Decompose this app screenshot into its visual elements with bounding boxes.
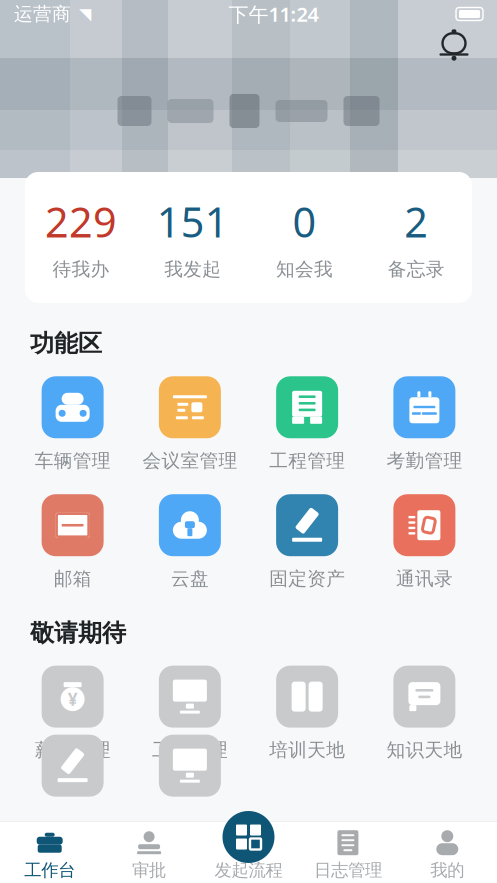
staticText: 车辆管理 — [35, 449, 111, 472]
button[interactable]: 会议室管理 — [131, 376, 248, 472]
staticText: 功能区 — [30, 329, 102, 358]
staticText: 151 — [157, 194, 229, 249]
button[interactable]: ¥ — [14, 666, 131, 761]
button[interactable]: 云盘 — [131, 494, 248, 590]
button[interactable]: 通知 — [437, 28, 471, 62]
staticText: 运营商 — [14, 2, 71, 25]
staticText: 工作台 — [24, 860, 75, 881]
button[interactable]: 固定资产 — [248, 494, 366, 590]
staticText: 薪酬管理 — [35, 739, 111, 761]
staticText: 日志管理 — [314, 860, 382, 881]
staticText: 审批 — [132, 860, 166, 881]
button[interactable]: 日志管理 — [298, 824, 398, 881]
staticText: 发起流程 — [214, 860, 282, 881]
staticText: 知识天地 — [386, 739, 462, 761]
staticText: 待我办 — [52, 258, 109, 281]
staticText: 工作管理 — [152, 739, 228, 761]
button[interactable]: 车辆管理 — [14, 376, 131, 472]
button[interactable]: 151 — [137, 190, 249, 285]
button[interactable]: 发起流程 — [199, 824, 298, 881]
staticText: 0 — [292, 194, 316, 249]
staticText: 知会我 — [276, 258, 333, 281]
staticText: 229 — [45, 194, 117, 249]
staticText: 我的 — [430, 860, 464, 881]
button[interactable]: 邮箱 — [14, 494, 131, 590]
button[interactable]: 我的 — [398, 824, 497, 881]
button[interactable]: 知识天地 — [366, 666, 483, 761]
button[interactable]: 工作台 — [0, 824, 99, 881]
button[interactable] — [131, 735, 248, 832]
staticText: 2 — [404, 194, 428, 249]
button[interactable]: 发起流程 — [222, 811, 274, 863]
button[interactable]: 0 — [248, 190, 360, 285]
button[interactable]: 通讯录 — [366, 494, 483, 590]
staticText: ¥ — [68, 688, 78, 711]
button[interactable]: 229 — [25, 190, 137, 285]
staticText: 下午11:24 — [228, 1, 318, 27]
staticText: 通讯录 — [396, 567, 453, 590]
staticText: 培训天地 — [269, 739, 345, 761]
button[interactable]: 2 — [360, 190, 472, 285]
button[interactable]: 考勤管理 — [366, 376, 483, 472]
staticText: ◥ — [79, 5, 91, 23]
staticText: 邮箱 — [54, 567, 92, 590]
button[interactable]: 工作管理 — [131, 666, 248, 761]
staticText: 我发起 — [164, 258, 221, 281]
button[interactable]: 工程管理 — [248, 376, 366, 472]
staticText: 工程管理 — [269, 449, 345, 472]
staticText: 敬请期待 — [30, 618, 126, 648]
button[interactable]: 审批 — [99, 824, 199, 881]
staticText: 会议室管理 — [142, 449, 237, 472]
staticText: 备忘录 — [388, 258, 445, 281]
staticText: 考勤管理 — [386, 449, 462, 472]
button[interactable] — [14, 735, 131, 832]
button[interactable]: 培训天地 — [248, 666, 366, 761]
staticText: 固定资产 — [269, 567, 345, 590]
staticText: 云盘 — [171, 567, 209, 590]
